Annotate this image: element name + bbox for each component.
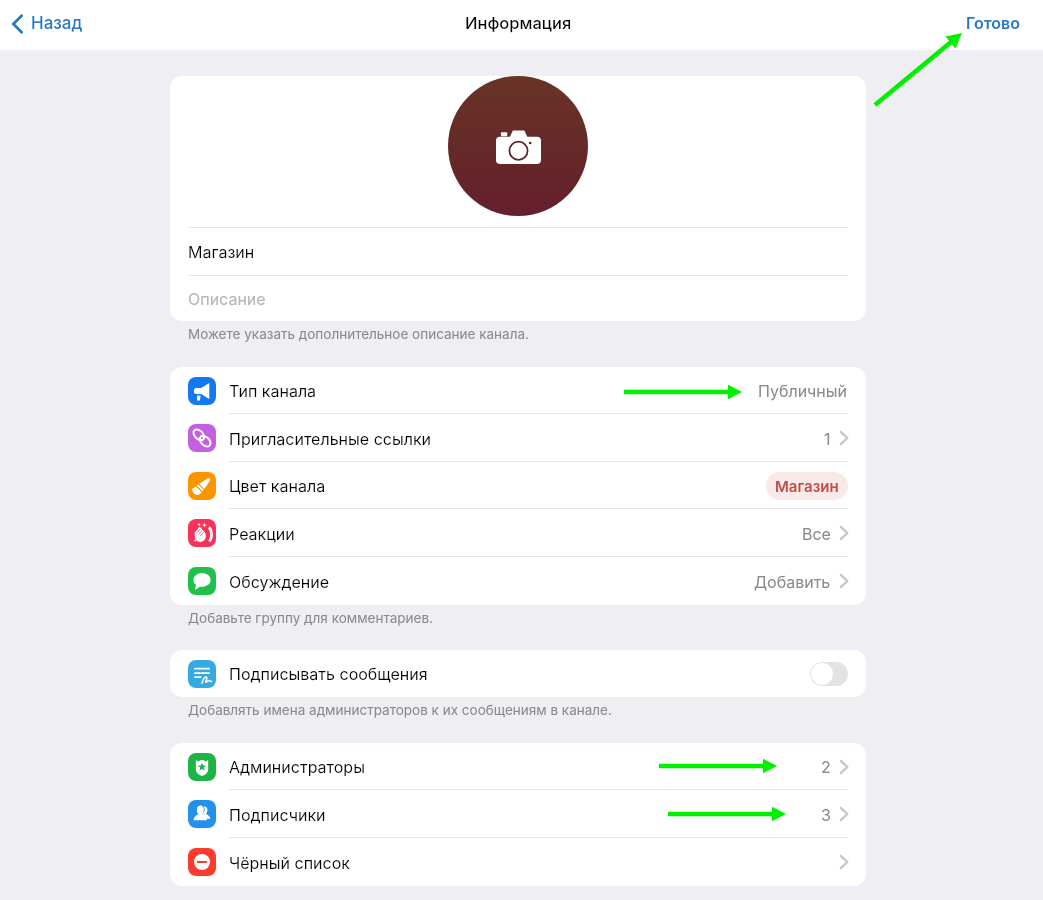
staticText: Можете указать дополнительное описание к…: [188, 326, 529, 342]
staticText: Добавьте группу для комментариев.: [188, 610, 433, 626]
staticText: Готово: [966, 13, 1021, 32]
staticText: Информация: [465, 13, 572, 33]
button[interactable]: Назад: [0, 9, 93, 38]
button[interactable]: Готово: [944, 8, 1043, 37]
staticText: Магазин: [188, 242, 255, 261]
staticText: Магазин: [775, 477, 839, 495]
button[interactable]: Реакции: [170, 509, 866, 557]
staticText: 2: [821, 757, 831, 776]
button[interactable]: Тип канала: [170, 367, 866, 414]
staticText: Подписывать сообщения: [229, 664, 428, 683]
staticText: Описание: [188, 289, 266, 308]
staticText: Добавлять имена администраторов к их соо…: [188, 702, 612, 718]
button[interactable]: Подписывать сообщения: [170, 650, 866, 697]
staticText: 1: [824, 429, 831, 448]
button[interactable]: Пригласительные ссылки: [170, 414, 866, 462]
button[interactable]: Подписывать сообщения: [810, 662, 848, 686]
staticText: Администраторы: [229, 757, 365, 776]
staticText: Цвет канала: [229, 476, 326, 495]
button[interactable]: Подписчики: [170, 790, 866, 838]
button[interactable]: Чёрный список: [170, 838, 866, 886]
button[interactable]: Администраторы: [170, 743, 866, 790]
staticText: Все: [802, 524, 831, 543]
staticText: 3: [821, 805, 831, 824]
button[interactable]: Цвет канала: [170, 462, 866, 509]
staticText: Назад: [31, 13, 83, 34]
staticText: Чёрный список: [229, 853, 350, 872]
staticText: Добавить: [754, 572, 831, 591]
staticText: Подписчики: [229, 805, 326, 824]
staticText: Реакции: [229, 524, 295, 543]
staticText: Пригласительные ссылки: [229, 429, 432, 448]
staticText: Тип канала: [229, 381, 317, 400]
staticText: Публичный: [758, 381, 848, 400]
staticText: Обсуждение: [229, 572, 330, 591]
button[interactable]: Обсуждение: [170, 557, 866, 605]
